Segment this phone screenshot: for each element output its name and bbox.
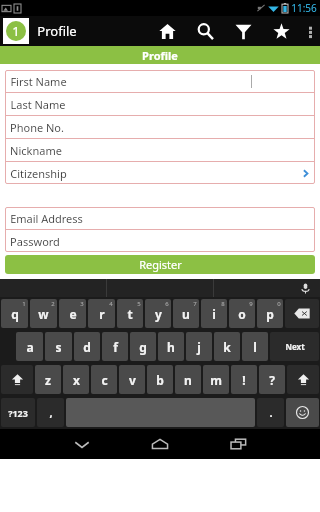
staticText: v xyxy=(129,372,136,388)
button[interactable]: Period xyxy=(257,398,284,427)
staticText: Citizenship xyxy=(10,166,67,181)
staticText: x xyxy=(73,372,80,388)
button[interactable]: x xyxy=(63,365,89,394)
button[interactable]: Filter xyxy=(224,16,262,46)
staticText: s xyxy=(55,339,62,355)
staticText: y xyxy=(155,306,162,322)
staticText: Email Address xyxy=(10,211,83,226)
button[interactable]: a xyxy=(16,332,43,361)
staticText: ? xyxy=(269,372,275,388)
button[interactable]: r xyxy=(88,299,115,328)
staticText: 11:56 xyxy=(291,1,317,15)
button[interactable]: e xyxy=(59,299,86,328)
staticText: b xyxy=(156,372,164,388)
staticText: 1 xyxy=(22,300,26,308)
staticText: e xyxy=(69,306,77,322)
staticText: p xyxy=(266,306,274,322)
staticText: Nickname xyxy=(10,143,62,158)
staticText: w xyxy=(38,306,49,322)
staticText: c xyxy=(101,372,108,388)
button[interactable]: f xyxy=(102,332,128,361)
staticText: First Name xyxy=(10,74,67,89)
button[interactable]: k xyxy=(214,332,240,361)
button[interactable]: Last Name xyxy=(5,93,315,115)
button[interactable]: i xyxy=(201,299,227,328)
staticText: Phone No. xyxy=(10,120,64,135)
button[interactable]: p xyxy=(257,299,283,328)
staticText: 7 xyxy=(193,300,197,308)
button[interactable]: Comma xyxy=(37,398,64,427)
button[interactable]: First Name xyxy=(5,70,315,92)
button[interactable]: Recent apps xyxy=(199,429,277,459)
button[interactable]: h xyxy=(158,332,184,361)
button[interactable]: z xyxy=(35,365,61,394)
button[interactable]: u xyxy=(173,299,199,328)
button[interactable]: Nickname xyxy=(5,139,315,161)
button[interactable]: Backspace xyxy=(285,299,319,328)
staticText: . xyxy=(269,405,273,420)
staticText: r xyxy=(99,306,105,322)
button[interactable]: t xyxy=(117,299,143,328)
button[interactable]: Email Address xyxy=(5,207,315,229)
button[interactable]: More options xyxy=(300,16,320,46)
button[interactable]: Hide keyboard xyxy=(43,429,121,459)
button[interactable]: Shift xyxy=(287,365,319,394)
button[interactable]: Voice input xyxy=(214,279,320,297)
staticText: k xyxy=(223,339,231,355)
staticText: o xyxy=(238,306,246,322)
button[interactable]: b xyxy=(147,365,173,394)
button[interactable]: Phone No. xyxy=(5,116,315,138)
button[interactable]: q xyxy=(1,299,28,328)
staticText: 0 xyxy=(277,300,281,308)
staticText: , xyxy=(49,405,53,420)
staticText: 1 xyxy=(12,22,20,40)
button[interactable]: Shift xyxy=(1,365,33,394)
staticText: ?123 xyxy=(8,407,28,419)
button[interactable]: d xyxy=(74,332,100,361)
staticText: 5 xyxy=(137,300,141,308)
button[interactable]: l xyxy=(242,332,268,361)
staticText: t xyxy=(127,306,133,322)
button[interactable]: Symbols xyxy=(1,398,35,427)
staticText: n xyxy=(184,372,192,388)
staticText: d xyxy=(83,339,91,355)
staticText: i xyxy=(212,306,216,322)
button[interactable]: o xyxy=(229,299,255,328)
staticText: 3 xyxy=(80,300,84,308)
staticText: f xyxy=(113,339,118,355)
staticText: a xyxy=(26,339,34,355)
button[interactable]: Navigate up xyxy=(3,18,29,44)
staticText: j xyxy=(197,339,201,355)
button[interactable]: s xyxy=(45,332,72,361)
button[interactable]: Next xyxy=(270,332,319,361)
button[interactable]: Password xyxy=(5,230,315,252)
button[interactable]: Home xyxy=(121,429,199,459)
staticText: Next xyxy=(285,341,305,352)
button[interactable]: n xyxy=(175,365,201,394)
button[interactable]: ! xyxy=(231,365,257,394)
button[interactable]: Emoji xyxy=(286,398,319,427)
button[interactable]: g xyxy=(130,332,156,361)
button[interactable]: Search xyxy=(186,16,224,46)
staticText: ! xyxy=(242,372,246,388)
button[interactable]: Home xyxy=(148,16,186,46)
staticText: u xyxy=(182,306,190,322)
staticText: 2 xyxy=(51,300,55,308)
button[interactable]: m xyxy=(203,365,229,394)
staticText: q xyxy=(11,306,19,322)
button[interactable]: Citizenship xyxy=(5,162,315,184)
button[interactable]: v xyxy=(119,365,145,394)
button[interactable]: Register xyxy=(5,255,315,274)
button[interactable]: c xyxy=(91,365,117,394)
staticText: Register xyxy=(139,257,182,272)
staticText: h xyxy=(167,339,175,355)
button[interactable]: y xyxy=(145,299,171,328)
staticText: z xyxy=(45,372,51,388)
staticText: g xyxy=(139,339,147,355)
button[interactable]: Favorites xyxy=(262,16,300,46)
staticText: 9 xyxy=(249,300,253,308)
button[interactable]: j xyxy=(186,332,212,361)
button[interactable]: ? xyxy=(259,365,285,394)
button[interactable]: w xyxy=(30,299,57,328)
